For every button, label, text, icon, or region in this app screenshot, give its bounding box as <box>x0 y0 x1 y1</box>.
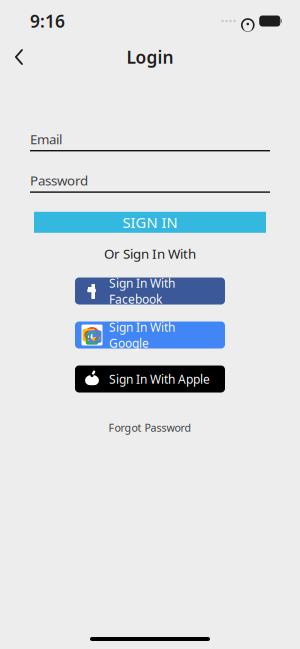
button[interactable]: Sign In With Facebook <box>75 277 225 304</box>
staticText: Login <box>126 45 173 68</box>
staticText: Sign In With Google <box>109 319 175 351</box>
button[interactable]: Sign In With Google <box>75 321 225 348</box>
staticText: Sign In With Apple <box>109 371 210 387</box>
button[interactable]: SIGN IN <box>34 212 266 233</box>
staticText: SIGN IN <box>122 213 177 232</box>
button[interactable]: Sign In With Apple <box>75 365 225 392</box>
button[interactable]: Back <box>4 42 34 72</box>
staticText: Email <box>30 130 62 148</box>
button[interactable]: Forgot Password <box>102 414 197 441</box>
staticText: Sign In With Facebook <box>109 275 175 307</box>
staticText: Password <box>30 171 88 189</box>
staticText: Forgot Password <box>108 420 191 435</box>
staticText: 9:16 <box>30 9 65 32</box>
staticText: Or Sign In With <box>104 245 196 262</box>
